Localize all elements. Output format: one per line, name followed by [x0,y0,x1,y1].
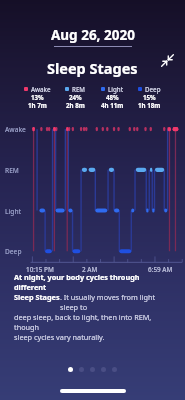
staticText: REM [5,166,19,175]
staticText: Awake [31,85,51,93]
staticText: 6:59 AM [148,265,173,274]
staticText: . It usually moves from light sleep to [60,292,171,312]
staticText: Awake [5,125,26,134]
staticText: Light [5,207,22,216]
button[interactable] [79,367,84,372]
staticText: 2 AM [82,265,98,274]
staticText: 10:15 PM [26,265,54,274]
button[interactable] [101,367,106,372]
staticText: 24% [69,93,82,101]
staticText: 13% [31,93,44,101]
button[interactable] [68,367,73,372]
staticText: 1h 7m [28,101,47,109]
staticText: sleep cycles vary naturally. [14,332,105,342]
staticText: 1h 18m [138,101,161,109]
button[interactable]: Aug 26, 2020 [51,26,135,47]
button[interactable] [112,367,117,372]
button[interactable]: Deep [138,85,161,109]
button[interactable]: Awake [24,85,51,109]
staticText: Deep [145,85,161,93]
staticText: 15% [143,93,156,101]
staticText: 48% [106,93,119,101]
staticText: Sleep Stages [47,58,138,78]
staticText: Sleep Stages [14,292,60,302]
staticText: At night, your body cycles through diffe… [14,272,171,292]
staticText: 4h 11m [101,101,124,109]
button[interactable]: REM [65,85,86,109]
staticText: deep sleep, back to light, then into REM… [14,312,171,332]
staticText: REM [72,85,86,93]
staticText: Aug 26, 2020 [51,26,135,44]
staticText: Deep [5,247,22,256]
button[interactable] [90,367,95,372]
button[interactable]: Light [101,85,124,109]
staticText: Light [108,85,124,93]
button[interactable]: Collapse [156,49,178,71]
staticText: 2h 8m [66,101,85,109]
